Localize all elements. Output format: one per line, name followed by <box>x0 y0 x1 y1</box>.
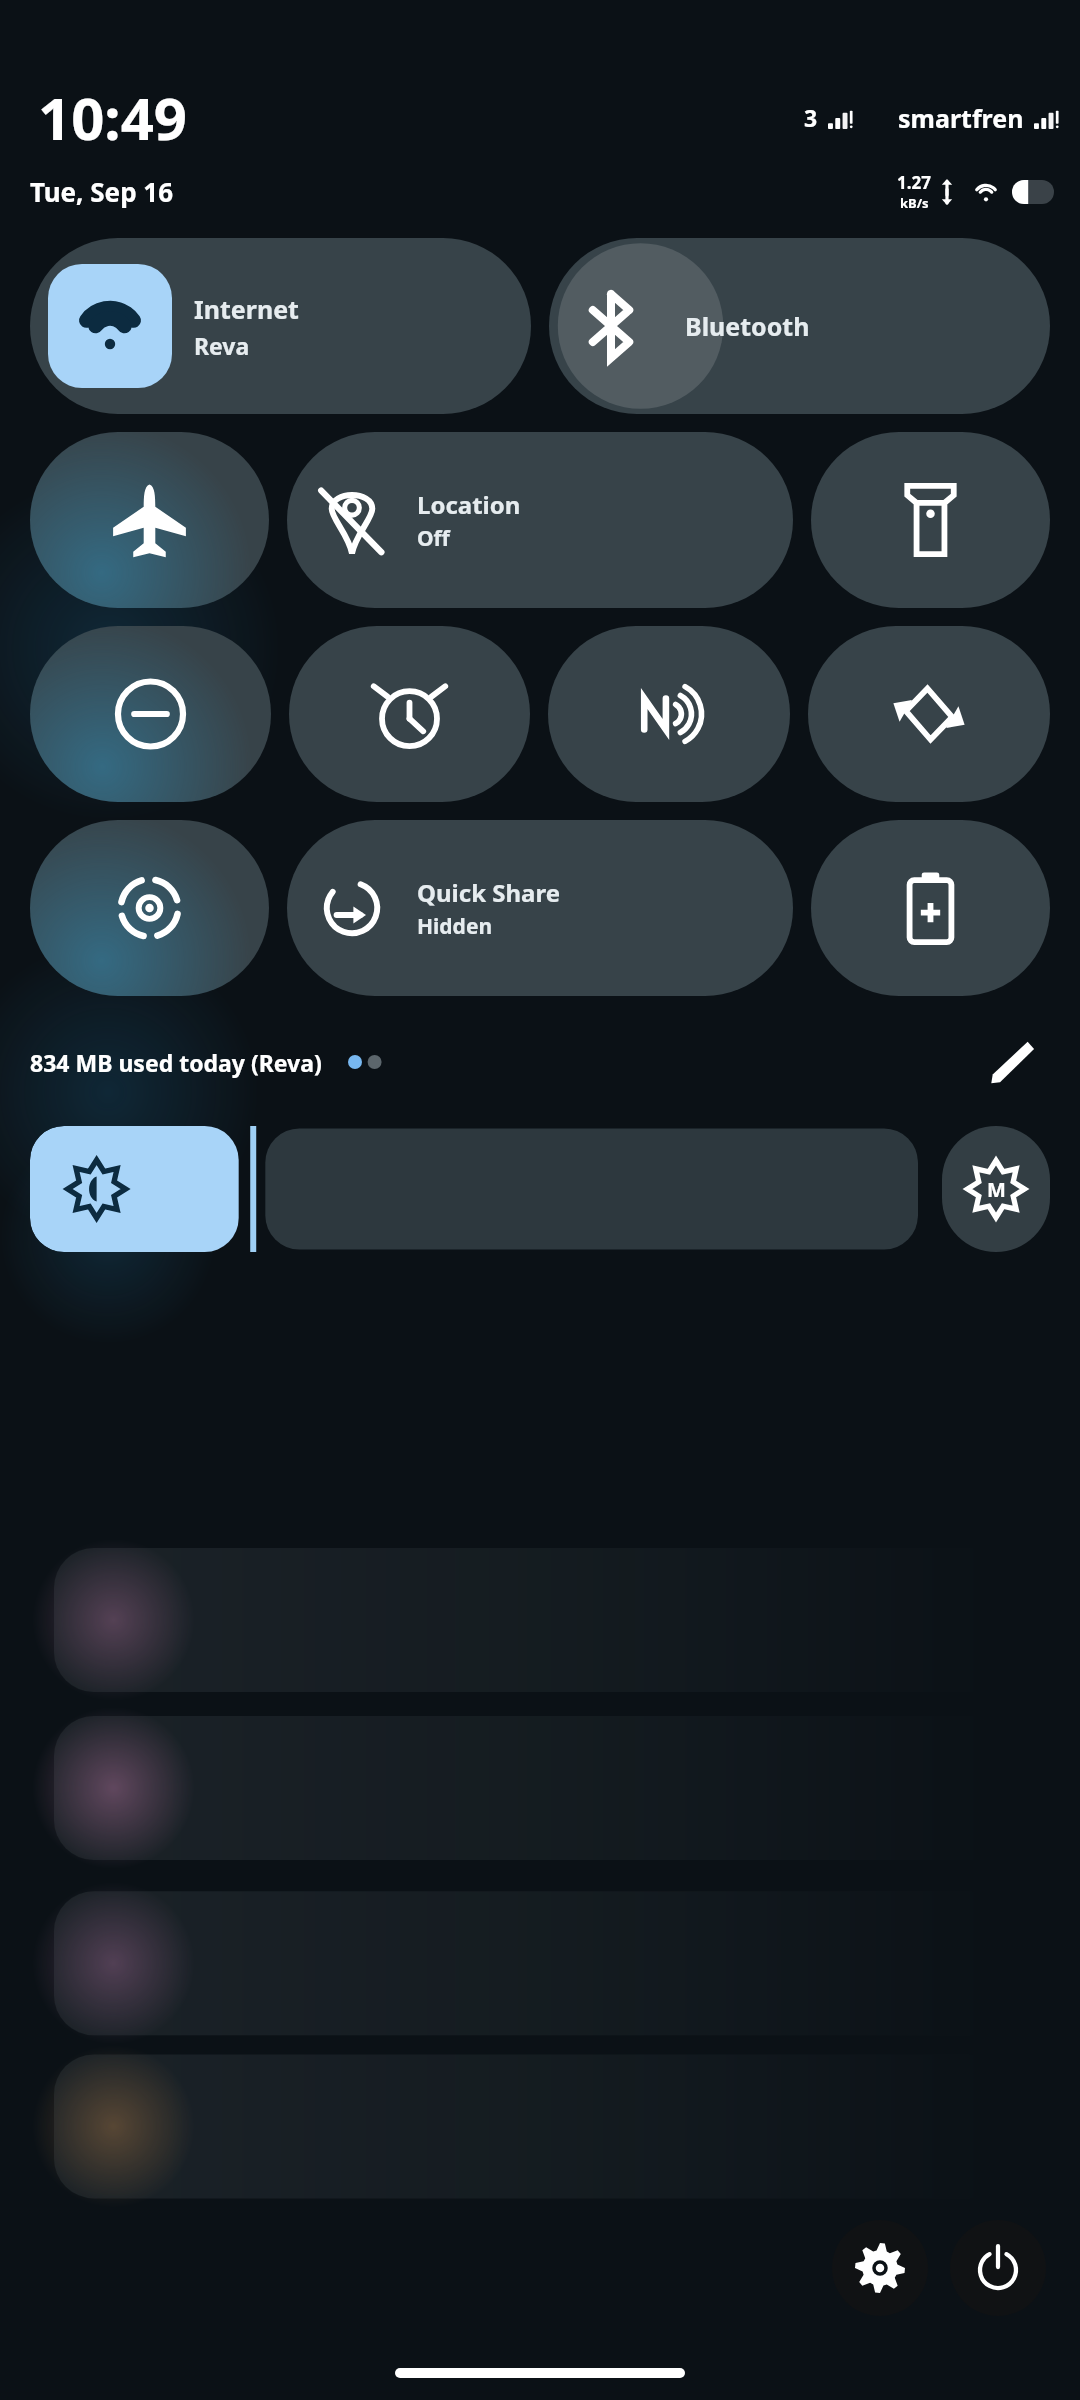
staticText: 3 <box>804 102 818 133</box>
button[interactable]: Edit tiles <box>980 1030 1044 1094</box>
button[interactable]: Battery saver <box>811 820 1050 996</box>
staticText: smartfren <box>898 101 1024 135</box>
staticText: M <box>987 1176 1006 1203</box>
staticText: 10:49 <box>38 78 188 157</box>
staticText: Quick Share <box>417 876 561 909</box>
button[interactable]: Airplane mode <box>30 432 269 608</box>
button[interactable]: NFC <box>548 626 790 802</box>
staticText: Tue, Sep 16 <box>30 174 174 209</box>
button[interactable]: Quick Share <box>287 820 793 996</box>
staticText: Location <box>417 488 521 521</box>
button[interactable]: Flashlight <box>811 432 1050 608</box>
staticText: Off <box>417 524 450 553</box>
button[interactable]: Brightness <box>30 1126 918 1252</box>
button[interactable]: Power <box>950 2220 1046 2316</box>
button[interactable]: Do not disturb <box>30 626 271 802</box>
button[interactable]: Bluetooth <box>549 238 1050 414</box>
staticText: 1.27 <box>897 171 931 194</box>
staticText: Internet <box>194 292 299 326</box>
button[interactable]: Alarm <box>289 626 530 802</box>
button[interactable]: Auto rotate <box>808 626 1050 802</box>
staticText: Reva <box>194 330 250 361</box>
button[interactable]: Settings <box>832 2220 928 2316</box>
button[interactable]: Internet <box>30 238 531 414</box>
button[interactable]: Location <box>287 432 793 608</box>
staticText: Hidden <box>417 912 493 941</box>
staticText: 834 MB used today (Reva) <box>30 1047 322 1078</box>
staticText: kB/s <box>900 194 929 212</box>
button[interactable]: Scan QR code <box>30 820 269 996</box>
button[interactable]: Adaptive brightness <box>942 1126 1050 1252</box>
staticText: Bluetooth <box>685 309 810 343</box>
